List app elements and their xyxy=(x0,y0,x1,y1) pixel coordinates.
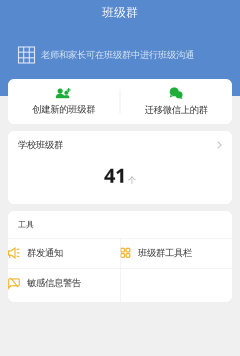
staticText: 个 xyxy=(128,175,136,185)
button[interactable]: 敏感信息警告 xyxy=(8,268,120,298)
button[interactable]: 群发通知 xyxy=(8,238,120,268)
staticText: 班级群 xyxy=(102,5,138,20)
button[interactable]: 创建新的班级群 xyxy=(8,79,119,124)
staticText: 学校班级群 xyxy=(18,139,63,151)
button[interactable]: 班级群工具栏 xyxy=(120,238,232,268)
button[interactable]: 迁移微信上的群 xyxy=(120,79,232,124)
staticText: 老师和家长可在班级群中进行班级沟通 xyxy=(41,49,194,61)
staticText: 41 xyxy=(104,162,126,188)
button[interactable]: 学校班级群 xyxy=(8,131,232,204)
staticText: 工具 xyxy=(18,220,34,229)
staticText: 迁移微信上的群 xyxy=(145,104,208,116)
staticText: 敏感信息警告 xyxy=(27,277,81,289)
staticText: 班级群工具栏 xyxy=(138,247,192,259)
staticText: 创建新的班级群 xyxy=(32,104,95,115)
staticText: 群发通知 xyxy=(27,247,63,259)
